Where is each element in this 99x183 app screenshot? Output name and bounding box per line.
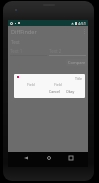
staticText: Field — [27, 82, 35, 87]
staticText: DiffFinder — [11, 28, 37, 35]
staticText: Compare — [68, 60, 86, 65]
staticText: Cancel — [49, 89, 60, 94]
staticText: Title — [75, 76, 82, 81]
button[interactable]: DiffFinder — [8, 26, 88, 37]
button[interactable]: Home — [43, 152, 54, 163]
button[interactable]: Text 1 — [10, 48, 47, 56]
staticText: Okay — [66, 89, 75, 94]
staticText: Text — [11, 39, 20, 45]
button[interactable]: Text 2 — [49, 48, 86, 56]
staticText: 4:51 — [78, 21, 86, 26]
button[interactable]: Recent apps — [65, 152, 76, 163]
button[interactable]: Okay — [65, 88, 76, 95]
button[interactable]: Field — [17, 81, 44, 87]
button[interactable]: More options — [84, 29, 85, 34]
staticText: Text 1 — [10, 48, 23, 54]
button[interactable]: Back — [20, 152, 31, 163]
button[interactable]: Cancel — [48, 88, 61, 95]
staticText: Field — [54, 82, 62, 87]
button[interactable]: Field — [44, 81, 72, 87]
button[interactable]: Compare — [66, 59, 87, 66]
staticText: Text 2 — [49, 48, 62, 54]
